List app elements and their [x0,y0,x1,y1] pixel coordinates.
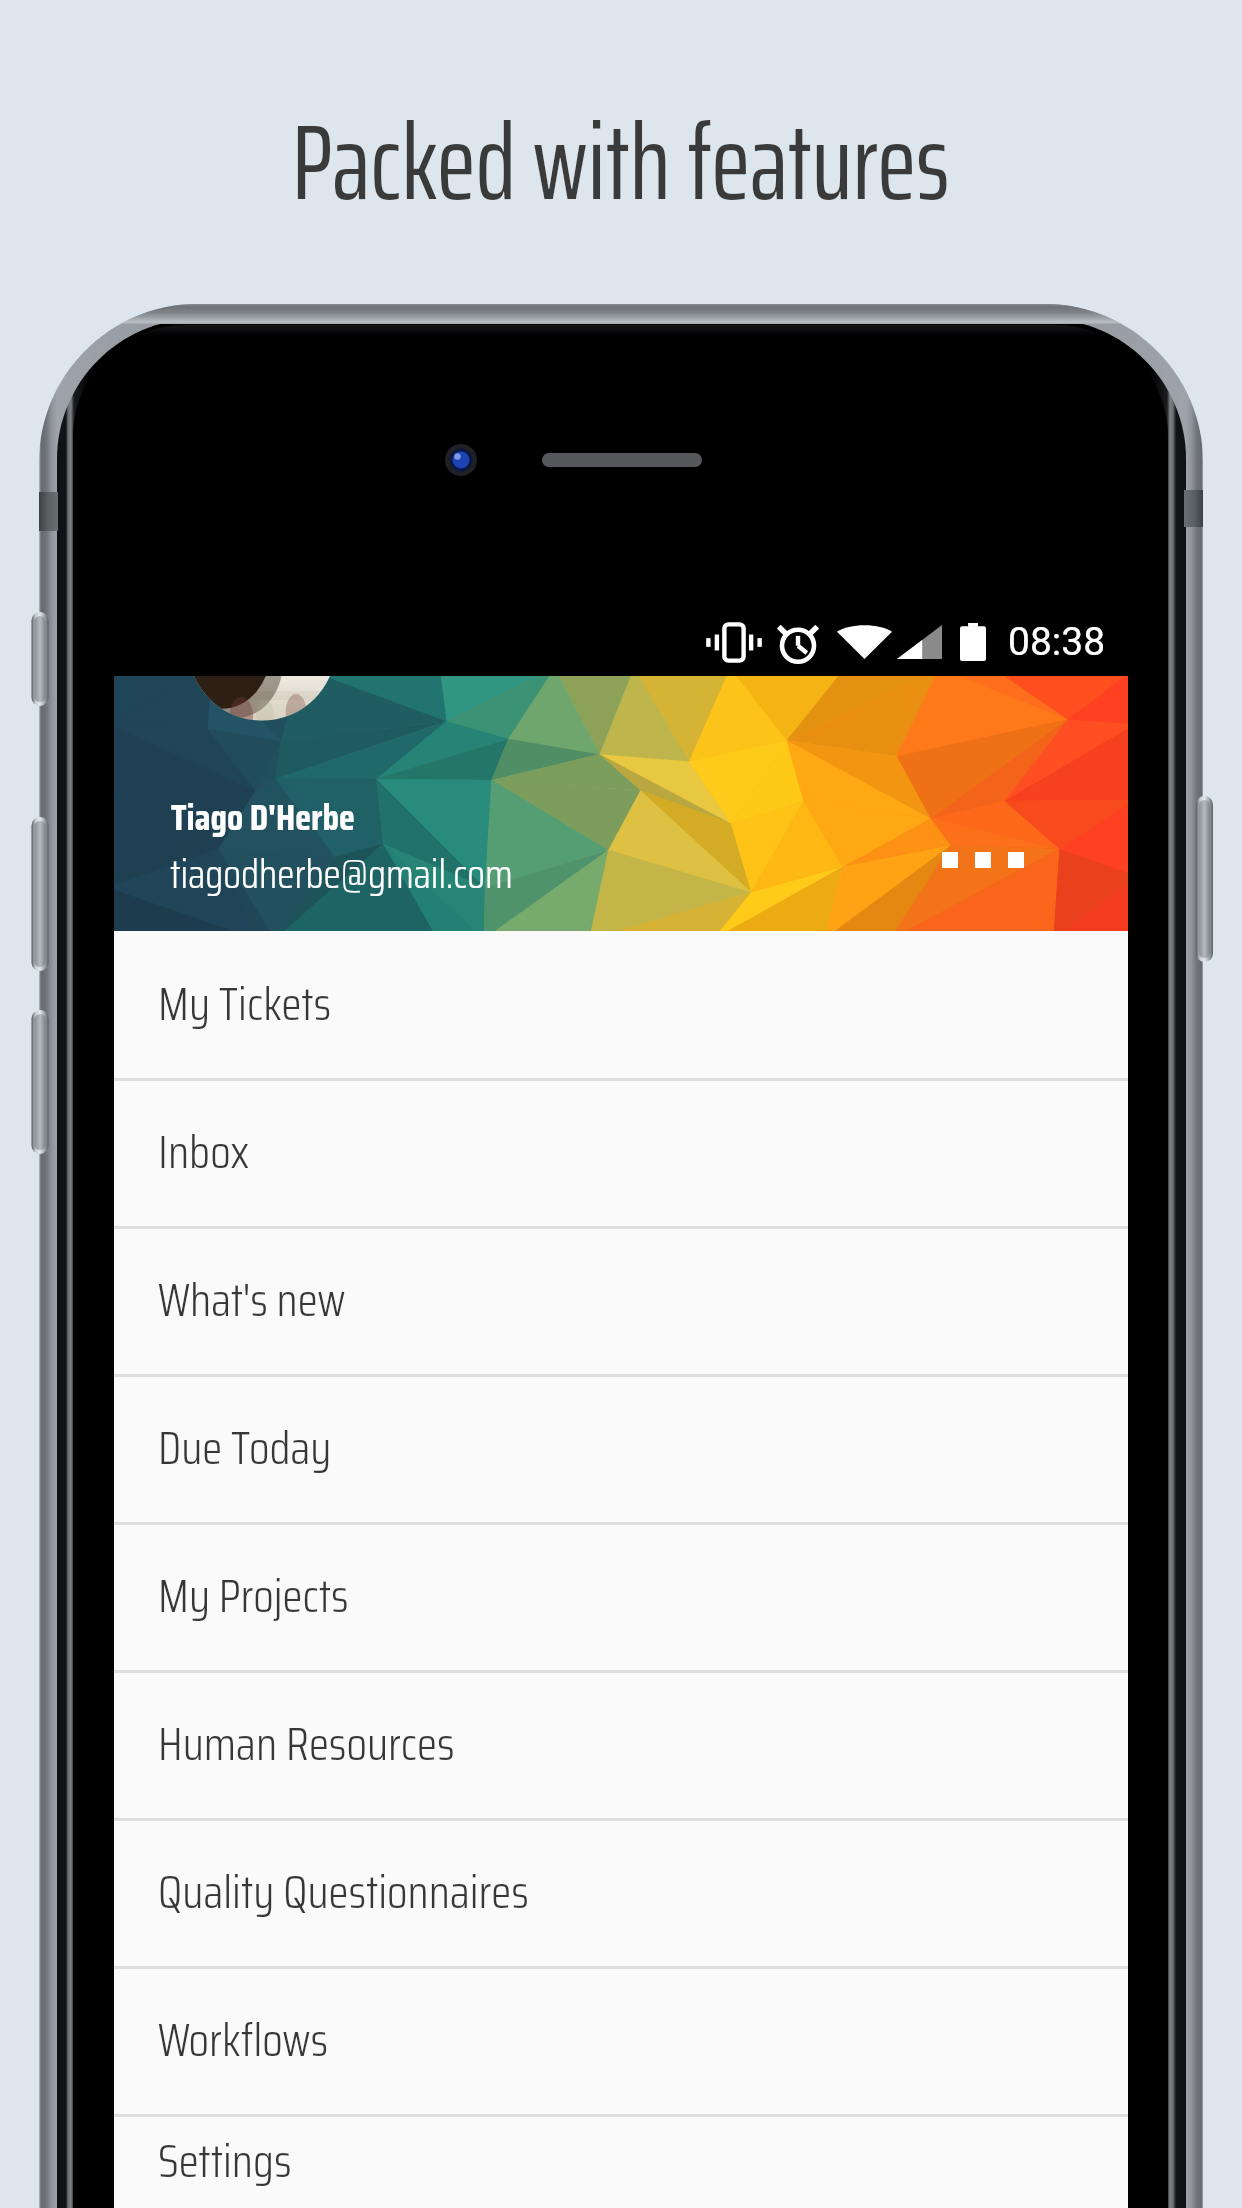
staticText: 08:38 [1008,619,1106,665]
staticText: Packed with features [292,80,950,245]
button[interactable]: Switch account [930,828,1036,892]
staticText: My Projects [158,1559,349,1632]
staticText: Inbox [158,1115,250,1188]
button[interactable]: My Tickets [114,933,1128,1078]
button[interactable]: Quality Questionnaires [114,1821,1128,1966]
staticText: Settings [158,2124,292,2197]
button[interactable]: Workflows [114,1969,1128,2114]
staticText: Human Resources [158,1707,455,1780]
staticText: Tiago D'Herbe [171,788,355,846]
staticText: Due Today [158,1411,332,1484]
staticText: My Tickets [158,967,332,1040]
staticText: Quality Questionnaires [158,1855,529,1928]
button[interactable]: Settings [114,2117,1128,2208]
button[interactable]: Inbox [114,1081,1128,1226]
button[interactable]: Profile photo [114,676,1128,931]
staticText: tiagodherbe@gmail.com [170,843,513,906]
button[interactable]: My Projects [114,1525,1128,1670]
button[interactable]: Human Resources [114,1673,1128,1818]
button[interactable]: Profile photo [188,676,336,722]
button[interactable]: What's new [114,1229,1128,1374]
staticText: What's new [158,1263,346,1336]
button[interactable]: Due Today [114,1377,1128,1522]
staticText: Workflows [158,2003,329,2076]
